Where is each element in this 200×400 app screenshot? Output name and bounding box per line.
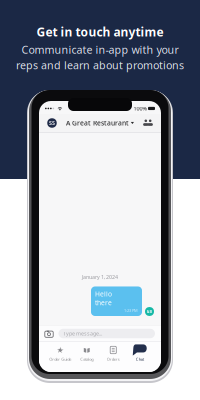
staticText: Orders <box>107 357 120 362</box>
staticText: 1:23 PM <box>124 308 138 313</box>
button[interactable]: Chat <box>126 342 153 375</box>
staticText: A Great Restaurant <box>66 119 129 127</box>
staticText: 100% <box>133 105 146 112</box>
staticText: Hello there <box>95 289 112 307</box>
button[interactable]: Catalog <box>73 342 100 375</box>
button[interactable]: Orders <box>100 342 126 375</box>
staticText: January 1, 2024 <box>82 273 118 280</box>
staticText: reps and learn about promotions <box>16 58 184 72</box>
button[interactable]: Participants <box>139 114 156 131</box>
staticText: Get in touch anytime <box>36 24 163 40</box>
staticText: AB <box>146 309 152 314</box>
button[interactable]: SS <box>43 114 60 131</box>
staticText: Catalog <box>80 357 93 362</box>
staticText: Type message... <box>63 330 102 337</box>
staticText: Chat <box>136 357 144 362</box>
button[interactable]: Type message... <box>58 329 155 338</box>
staticText: Communicate in-app with your <box>21 42 178 57</box>
button[interactable]: A Great Restaurant <box>66 115 134 130</box>
button[interactable]: Camera <box>44 328 54 338</box>
button[interactable]: Order Guide <box>47 342 73 375</box>
staticText: Order Guide <box>49 357 71 362</box>
staticText: SS <box>49 119 55 127</box>
